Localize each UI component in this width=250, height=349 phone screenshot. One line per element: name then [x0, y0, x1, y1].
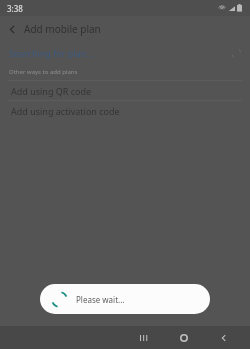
staticText: Searching for plan... — [9, 47, 94, 59]
staticText: Add mobile plan — [24, 22, 101, 36]
button[interactable]: Add using QR code — [0, 81, 250, 100]
staticText: Other ways to add plans — [9, 68, 78, 76]
staticText: Please wait... — [76, 294, 125, 305]
staticText: Add using activation code — [11, 105, 120, 117]
button[interactable]: Home — [164, 326, 204, 349]
button[interactable]: Add using activation code — [0, 101, 250, 120]
button[interactable]: Please wait... — [40, 284, 210, 314]
button[interactable]: Back — [204, 326, 244, 349]
staticText: Add using QR code — [11, 85, 92, 97]
button[interactable]: Recent apps — [124, 326, 164, 349]
button[interactable]: Searching for plan... — [0, 42, 250, 64]
button[interactable]: Navigate up — [0, 17, 24, 41]
staticText: 3:38 — [7, 3, 23, 14]
